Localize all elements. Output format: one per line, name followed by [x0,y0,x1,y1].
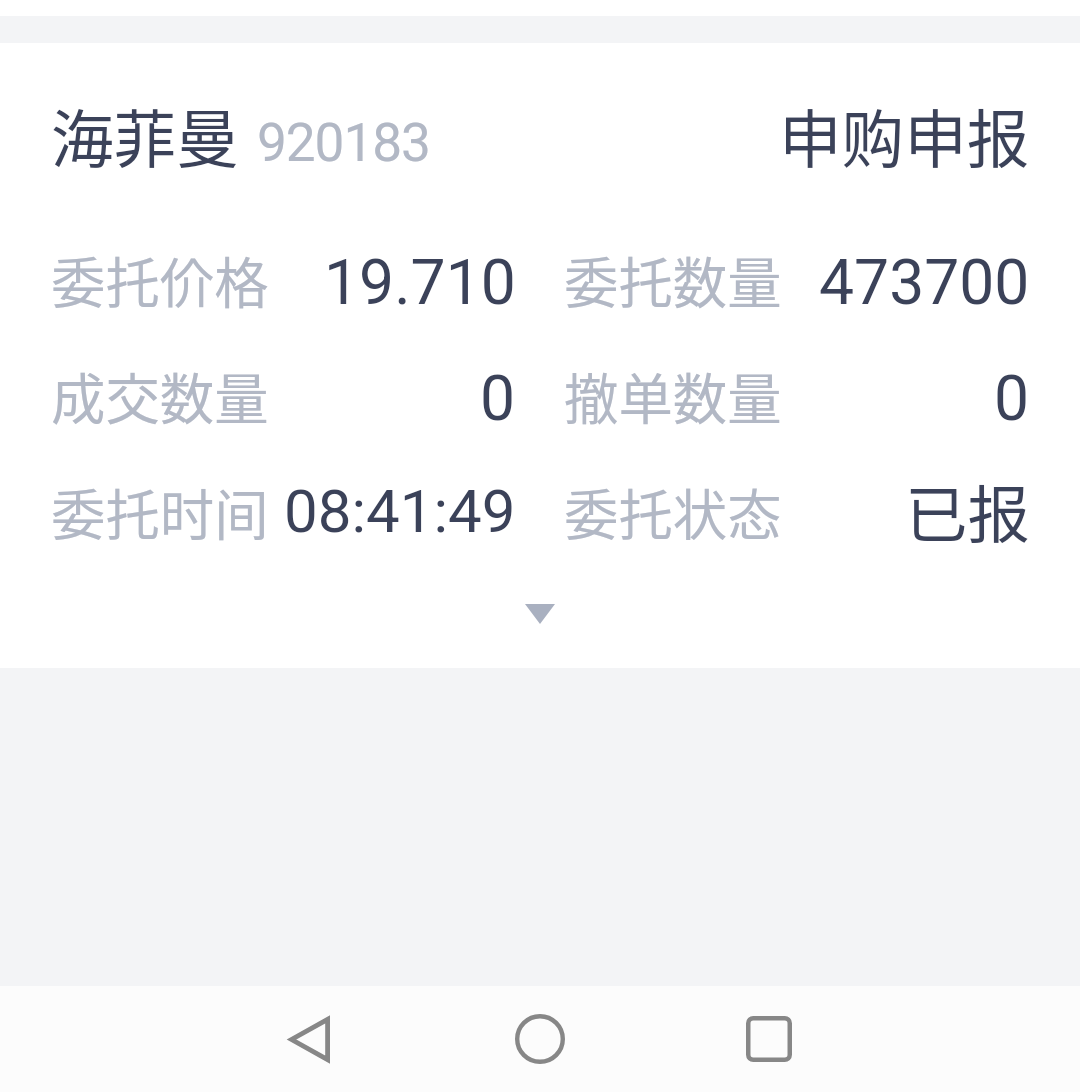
staticText: 473700 [819,246,1030,319]
staticText: 委托价格 [51,240,269,319]
staticText: 委托时间 [51,472,269,551]
staticText: 0 [480,362,516,435]
staticText: 0 [994,362,1030,435]
button[interactable]: Back [253,986,365,1092]
staticText: 920183 [257,112,430,174]
staticText: 委托状态 [564,472,782,551]
staticText: 成交数量 [51,356,269,435]
staticText: 08:41:49 [284,476,516,546]
staticText: 申购申报 [779,89,1030,180]
staticText: 海菲曼 [51,89,239,180]
button[interactable]: 海菲曼 [0,43,1080,668]
staticText: 19.710 [324,246,516,319]
staticText: 委托数量 [564,240,782,319]
button[interactable]: Home [484,986,596,1092]
button[interactable]: Recent apps [713,986,825,1092]
staticText: 撤单数量 [564,356,782,435]
button[interactable]: Expand order details [0,589,1080,639]
staticText: 已报 [905,466,1030,556]
